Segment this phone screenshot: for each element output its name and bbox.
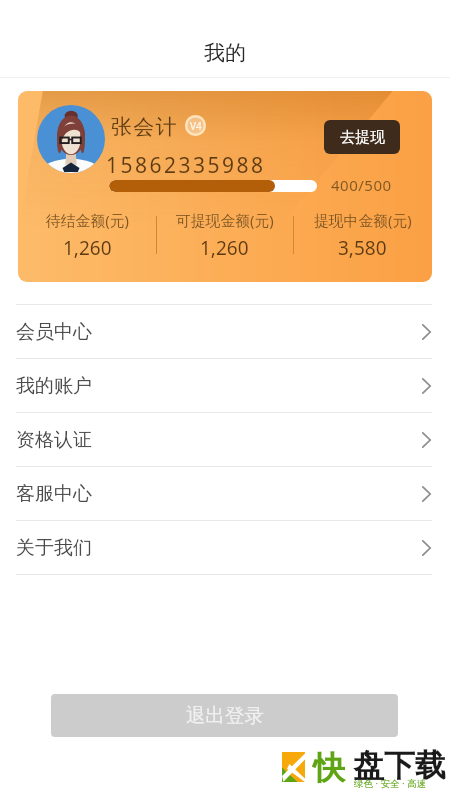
button[interactable]: 资格认证 (0, 413, 450, 466)
staticText: V4 (190, 119, 202, 133)
staticText: 去提现 (340, 128, 385, 147)
button[interactable]: 去提现 (324, 120, 400, 154)
button[interactable]: 客服中心 (0, 467, 450, 520)
staticText: 1,260 (200, 235, 249, 261)
staticText: 待结金额(元) (46, 210, 129, 230)
staticText: 15862335988 (106, 151, 266, 180)
staticText: 盘下载 (353, 746, 446, 785)
staticText: 提现中金额(元) (314, 210, 412, 230)
staticText: 绿色 · 安全 · 高速 (354, 777, 426, 790)
staticText: 客服中心 (16, 482, 92, 506)
staticText: 快 (313, 748, 345, 788)
button[interactable]: 退出登录 (51, 694, 398, 737)
staticText: 会员中心 (16, 320, 92, 344)
staticText: 我的 (204, 40, 246, 66)
staticText: 我的账户 (16, 374, 92, 398)
staticText: 退出登录 (186, 703, 264, 728)
staticText: 关于我们 (16, 536, 92, 560)
staticText: 张会计 (111, 114, 178, 140)
button[interactable]: 我的账户 (0, 359, 450, 412)
staticText: 400/500 (331, 175, 392, 195)
staticText: 3,580 (338, 235, 387, 261)
button[interactable]: 关于我们 (0, 521, 450, 574)
staticText: 资格认证 (16, 428, 92, 452)
button[interactable]: 会员中心 (0, 305, 450, 358)
staticText: 可提现金额(元) (176, 210, 274, 230)
staticText: 1,260 (63, 235, 112, 261)
